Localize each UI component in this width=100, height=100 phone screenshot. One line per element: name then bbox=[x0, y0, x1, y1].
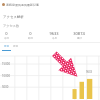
staticText: 9633 bbox=[86, 70, 92, 74]
staticText: 9633 bbox=[49, 31, 59, 36]
staticText: 今日 bbox=[4, 37, 9, 40]
button[interactable]: 月別 bbox=[11, 45, 20, 53]
staticText: 5000 bbox=[2, 85, 9, 89]
staticText: 月別 bbox=[13, 45, 18, 48]
staticText: 15000 bbox=[2, 62, 10, 66]
staticText: 昨日 bbox=[28, 37, 33, 40]
staticText: 10000 bbox=[2, 74, 10, 78]
button[interactable]: 日別 bbox=[2, 45, 11, 53]
button[interactable]: 0 bbox=[0, 31, 18, 40]
staticText: 0 bbox=[5, 31, 8, 36]
button[interactable]: 30874 bbox=[66, 31, 92, 40]
staticText: 累計 bbox=[77, 37, 82, 40]
staticText: 30874 bbox=[73, 31, 85, 36]
button[interactable]: 0 bbox=[18, 31, 42, 40]
staticText: 素晴発屋気暴気最新記事 bbox=[6, 3, 39, 7]
staticText: 日別 bbox=[4, 45, 9, 48]
button[interactable]: 9633 bbox=[42, 31, 66, 40]
staticText: アクセス数 bbox=[3, 24, 20, 28]
staticText: 0 bbox=[29, 31, 32, 36]
button[interactable]: 素晴発屋気暴気最新記事 bbox=[2, 1, 100, 8]
staticText: アクセス解析 bbox=[3, 15, 24, 19]
staticText: 今月 bbox=[52, 37, 57, 40]
